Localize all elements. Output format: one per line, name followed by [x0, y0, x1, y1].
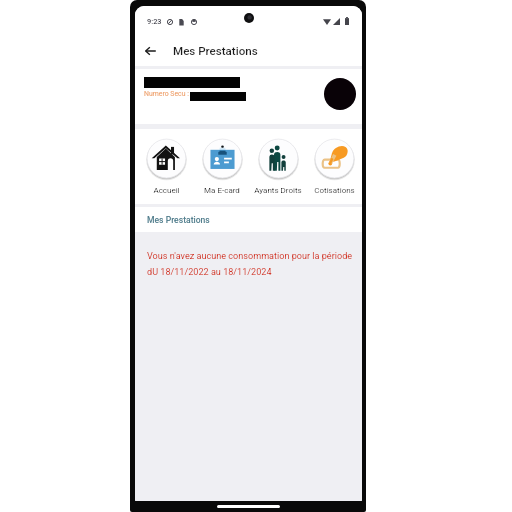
button[interactable]: Ayants Droits: [250, 138, 306, 195]
staticText: Mes Prestations: [147, 215, 210, 225]
button[interactable]: Ma E-card: [194, 138, 250, 195]
button[interactable]: Cotisations: [306, 138, 362, 195]
staticText: Mes Prestations: [173, 44, 258, 58]
staticText: dU 18/11/2022 au 18/11/2024: [147, 267, 272, 278]
staticText: Ayants Droits: [254, 186, 302, 195]
staticText: Numero Secu :: [144, 90, 189, 98]
button[interactable]: Back: [138, 39, 162, 63]
staticText: Vous n'avez aucune consommation pour la …: [147, 251, 353, 262]
button[interactable]: Accueil: [138, 138, 194, 195]
staticText: 9:23: [147, 17, 162, 26]
staticText: Cotisations: [314, 186, 355, 195]
staticText: Accueil: [153, 186, 180, 195]
staticText: Ma E-card: [204, 186, 240, 195]
button[interactable]: Profile avatar: [324, 78, 356, 110]
